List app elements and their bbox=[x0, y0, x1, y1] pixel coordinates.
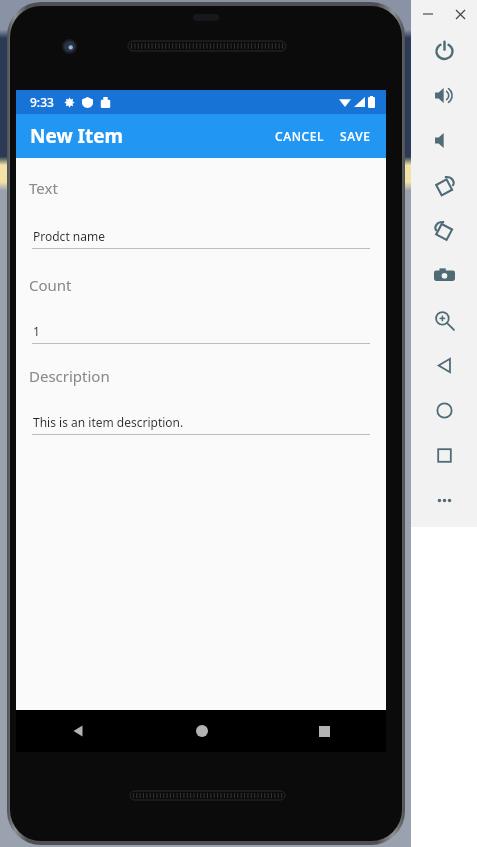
staticText: Count bbox=[29, 275, 72, 295]
button[interactable]: Prodct name bbox=[32, 228, 370, 249]
staticText: CANCEL bbox=[275, 128, 325, 144]
button[interactable]: Back bbox=[411, 343, 477, 388]
button[interactable]: Take screenshot bbox=[411, 253, 477, 298]
button[interactable]: Recent apps bbox=[263, 710, 386, 752]
button[interactable]: Rotate right bbox=[411, 208, 477, 253]
button[interactable]: Rotate left bbox=[411, 163, 477, 208]
button[interactable]: Home bbox=[411, 388, 477, 433]
staticText: Prodct name bbox=[33, 228, 105, 244]
button[interactable]: Home bbox=[140, 710, 263, 752]
button[interactable]: Close bbox=[444, 0, 477, 28]
button[interactable]: Overview bbox=[411, 433, 477, 478]
button[interactable]: CANCEL bbox=[269, 121, 331, 151]
button[interactable]: Minimise bbox=[411, 0, 444, 28]
button[interactable]: SAVE bbox=[334, 121, 377, 151]
staticText: Description bbox=[29, 366, 110, 386]
button[interactable]: This is an item description. bbox=[32, 414, 370, 435]
staticText: 9:33 bbox=[30, 94, 54, 110]
staticText: SAVE bbox=[340, 128, 371, 144]
staticText: This is an item description. bbox=[33, 414, 184, 430]
button[interactable]: More bbox=[411, 478, 477, 523]
button[interactable]: Volume down bbox=[411, 118, 477, 163]
staticText: Text bbox=[29, 178, 58, 198]
button[interactable]: Volume up bbox=[411, 73, 477, 118]
button[interactable]: Zoom bbox=[411, 298, 477, 343]
button[interactable]: Power bbox=[411, 28, 477, 73]
staticText: New Item bbox=[30, 123, 124, 149]
button[interactable]: 1 bbox=[32, 323, 370, 344]
staticText: 1 bbox=[33, 323, 40, 339]
button[interactable]: Back bbox=[16, 710, 140, 752]
